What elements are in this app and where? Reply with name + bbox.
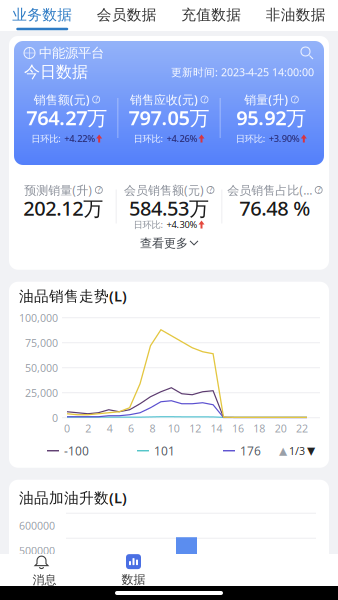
staticText: 中能源平台	[39, 45, 104, 61]
staticText: 0	[52, 411, 58, 425]
staticText: 95.92万	[236, 104, 306, 131]
staticText: 今日数据	[24, 62, 88, 82]
staticText: 16	[232, 421, 244, 435]
staticText: 600000	[19, 519, 55, 533]
staticText: 销售应收(元)	[130, 91, 198, 107]
staticText: 6	[128, 421, 134, 435]
button[interactable]: 非油数据	[253, 6, 338, 30]
staticText: 400000	[19, 569, 55, 583]
staticText: 101	[154, 443, 175, 459]
staticText: 75,000	[25, 336, 58, 350]
button[interactable]: 查看更多	[130, 230, 208, 270]
staticText: 更新时间: 2023-4-25 14:00:00	[171, 65, 314, 79]
staticText: 50,000	[25, 361, 58, 375]
staticText: +4.22%	[64, 132, 95, 145]
staticText: 充值数据	[181, 6, 241, 24]
staticText: 非油数据	[266, 6, 326, 24]
button[interactable]: 充值数据	[169, 6, 253, 30]
staticText: 25,000	[25, 386, 58, 400]
staticText: 500000	[19, 544, 55, 558]
staticText: 油品销售走势(L)	[19, 286, 127, 305]
staticText: 油品加油升数(L)	[19, 488, 127, 507]
staticText: 会员销售额(元)	[124, 182, 204, 198]
staticText: 4	[107, 421, 113, 435]
staticText: 797.05万	[128, 104, 209, 131]
staticText: 22	[296, 421, 308, 435]
staticText: 202.12万	[23, 195, 103, 221]
staticText: 18	[253, 421, 265, 435]
button[interactable]: 数据	[89, 554, 178, 587]
staticText: 100,000	[19, 311, 58, 325]
staticText: 日环比:	[31, 132, 63, 145]
staticText: 10	[168, 421, 180, 435]
staticText: -100	[64, 443, 89, 459]
staticText: 查看更多	[140, 236, 188, 251]
staticText: 日环比:	[133, 132, 165, 145]
staticText: 764.27万	[26, 104, 107, 131]
staticText: ▲	[279, 445, 287, 457]
staticText: 会员销售占比(...	[227, 182, 312, 198]
staticText: ?	[317, 185, 320, 195]
button[interactable]: 会员数据	[84, 6, 169, 30]
staticText: +4.26%	[166, 132, 197, 145]
staticText: 176	[240, 443, 261, 459]
staticText: 1/3	[289, 444, 305, 458]
staticText: 销量(升)	[244, 91, 288, 107]
staticText: 2	[85, 421, 91, 435]
staticText: ?	[293, 94, 296, 105]
staticText: 584.53万	[129, 195, 209, 221]
staticText: 20	[275, 421, 287, 435]
staticText: 76.48 %	[239, 195, 310, 221]
staticText: 销售额(元)	[34, 91, 90, 107]
staticText: 8	[149, 421, 155, 435]
staticText: +4.30%	[166, 218, 197, 231]
staticText: 业务数据	[12, 6, 72, 24]
staticText: 预测销量(升)	[24, 182, 92, 198]
staticText: 日环比:	[133, 218, 165, 231]
staticText: 会员数据	[97, 6, 157, 24]
staticText: ?	[95, 94, 98, 105]
staticText: ?	[203, 94, 206, 105]
staticText: ?	[209, 185, 212, 195]
staticText: 12	[189, 421, 201, 435]
staticText: ?	[97, 185, 100, 195]
staticText: 14	[210, 421, 222, 435]
staticText: +3.90%	[269, 132, 300, 145]
staticText: 消息	[32, 573, 56, 587]
button[interactable]: 消息	[0, 554, 89, 587]
staticText: 数据	[121, 572, 145, 587]
staticText: ▼	[307, 445, 315, 457]
button[interactable]: 业务数据	[0, 6, 84, 30]
staticText: 日环比:	[236, 132, 268, 145]
staticText: 0	[64, 421, 70, 435]
button[interactable]: Search	[300, 46, 314, 60]
